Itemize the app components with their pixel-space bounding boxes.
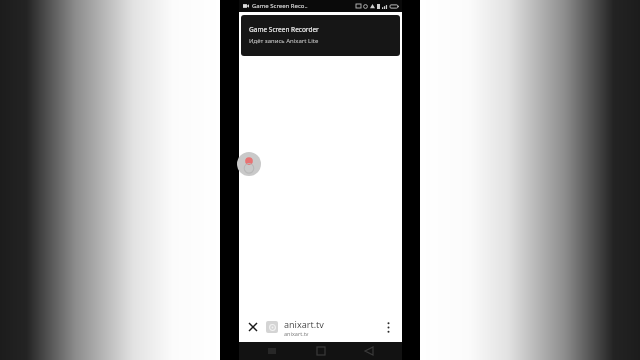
- button[interactable]: Home: [306, 342, 336, 360]
- staticText: Game Screen Recorder: [249, 25, 319, 34]
- staticText: anixart.tv: [284, 330, 309, 337]
- button[interactable]: Recents: [257, 342, 287, 360]
- button[interactable]: Game Screen Recorder: [241, 15, 400, 56]
- button[interactable]: More options: [380, 319, 396, 335]
- button[interactable]: Recording controls: [237, 152, 261, 176]
- staticText: Идёт запись Anixart Lite: [249, 37, 319, 45]
- staticText: Game Screen Reco..: [252, 2, 308, 10]
- button[interactable]: Close: [245, 319, 261, 335]
- staticText: anixart.tv: [284, 318, 324, 330]
- button[interactable]: Back: [354, 342, 384, 360]
